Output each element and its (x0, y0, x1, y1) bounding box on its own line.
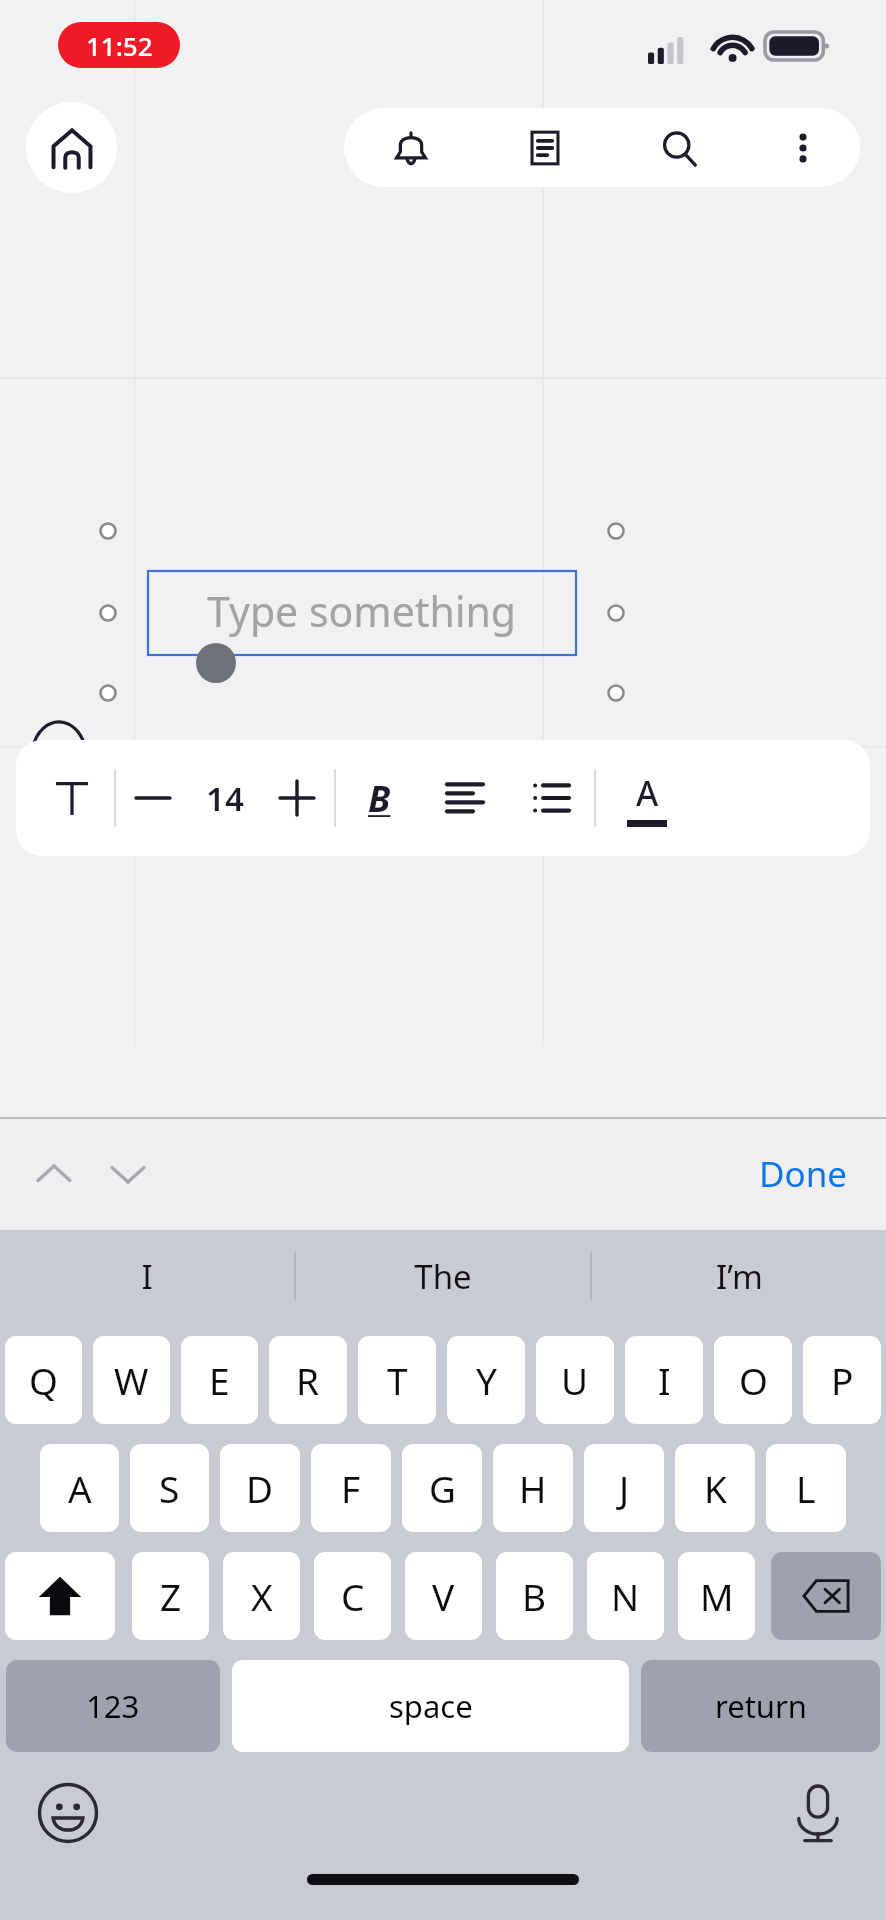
staticText: C (341, 1571, 365, 1621)
staticText: J (619, 1463, 630, 1513)
button[interactable]: Dictation (780, 1775, 856, 1851)
button[interactable]: The (296, 1230, 590, 1322)
staticText: I (141, 1254, 153, 1299)
button[interactable]: Z (132, 1552, 209, 1640)
staticText: Done (759, 1150, 848, 1198)
button[interactable]: Decrease font size (116, 756, 190, 840)
button[interactable]: Q (5, 1336, 82, 1424)
staticText: Q (29, 1355, 58, 1405)
button[interactable]: W (93, 1336, 170, 1424)
button[interactable]: D (220, 1444, 300, 1532)
button[interactable]: Done (738, 1136, 868, 1212)
staticText: Z (160, 1571, 182, 1621)
button[interactable]: Bold (336, 756, 422, 840)
button[interactable]: A (40, 1444, 119, 1532)
staticText: E (209, 1355, 230, 1405)
staticText: A (68, 1463, 92, 1513)
button[interactable]: O (714, 1336, 792, 1424)
button[interactable]: Text color (602, 756, 692, 840)
button[interactable]: Notifications (344, 108, 478, 187)
staticText: W (114, 1355, 149, 1405)
staticText: 11:52 (86, 28, 153, 63)
button[interactable]: Next field (96, 1142, 160, 1206)
button[interactable]: Backspace (771, 1552, 881, 1640)
staticText: 14 (206, 776, 244, 821)
button[interactable]: I’m (592, 1230, 886, 1322)
staticText: P (831, 1355, 854, 1405)
staticText: T (387, 1355, 408, 1405)
button[interactable]: Shift (5, 1552, 115, 1640)
staticText: V (432, 1571, 455, 1621)
button[interactable]: Align (422, 756, 508, 840)
staticText: O (739, 1355, 768, 1405)
button[interactable]: return (641, 1660, 880, 1752)
button[interactable]: J (584, 1444, 664, 1532)
button[interactable]: G (402, 1444, 482, 1532)
button[interactable]: M (678, 1552, 755, 1640)
staticText: Y (476, 1355, 497, 1405)
staticText: X (251, 1571, 273, 1621)
staticText: N (611, 1571, 640, 1621)
button[interactable]: E (181, 1336, 258, 1424)
staticText: 123 (86, 1685, 140, 1727)
staticText: B (368, 774, 391, 823)
button[interactable]: U (536, 1336, 614, 1424)
staticText: Type something (207, 583, 517, 639)
button[interactable]: Increase font size (260, 756, 334, 840)
button[interactable]: I (0, 1230, 294, 1322)
staticText: space (389, 1685, 473, 1727)
staticText: G (429, 1463, 456, 1513)
staticText: L (796, 1463, 816, 1513)
button[interactable]: I (625, 1336, 703, 1424)
staticText: I’m (716, 1254, 763, 1299)
button[interactable]: F (311, 1444, 391, 1532)
button[interactable]: L (766, 1444, 846, 1532)
button[interactable]: T (358, 1336, 436, 1424)
staticText: H (519, 1463, 547, 1513)
button[interactable]: Text style (30, 756, 114, 840)
button[interactable]: V (405, 1552, 482, 1640)
button[interactable]: N (587, 1552, 664, 1640)
button[interactable]: Emoji (30, 1775, 106, 1851)
button[interactable]: Search (612, 108, 746, 187)
staticText: The (414, 1254, 472, 1299)
button[interactable]: K (675, 1444, 755, 1532)
button[interactable]: Document (478, 108, 612, 187)
button[interactable]: 123 (6, 1660, 220, 1752)
button[interactable]: R (269, 1336, 347, 1424)
staticText: return (715, 1685, 807, 1727)
staticText: R (296, 1355, 320, 1405)
button[interactable]: Previous field (22, 1142, 86, 1206)
staticText: F (341, 1463, 361, 1513)
staticText: D (246, 1463, 274, 1513)
button[interactable]: C (314, 1552, 391, 1640)
button[interactable]: S (130, 1444, 209, 1532)
button[interactable]: Bulleted list (508, 756, 594, 840)
staticText: B (522, 1571, 547, 1621)
button[interactable]: Type something (148, 571, 576, 655)
button[interactable]: H (493, 1444, 573, 1532)
button[interactable]: X (223, 1552, 300, 1640)
staticText: I (658, 1355, 671, 1405)
button[interactable]: space (232, 1660, 629, 1752)
staticText: U (561, 1355, 589, 1405)
button[interactable]: 14 (190, 756, 260, 840)
staticText: A (636, 770, 659, 816)
staticText: S (159, 1463, 180, 1513)
staticText: K (704, 1463, 727, 1513)
button[interactable]: More options (746, 108, 860, 187)
button[interactable]: P (803, 1336, 881, 1424)
button[interactable]: Home (26, 102, 117, 193)
button[interactable]: B (496, 1552, 573, 1640)
button[interactable]: Y (447, 1336, 525, 1424)
staticText: M (700, 1571, 734, 1621)
